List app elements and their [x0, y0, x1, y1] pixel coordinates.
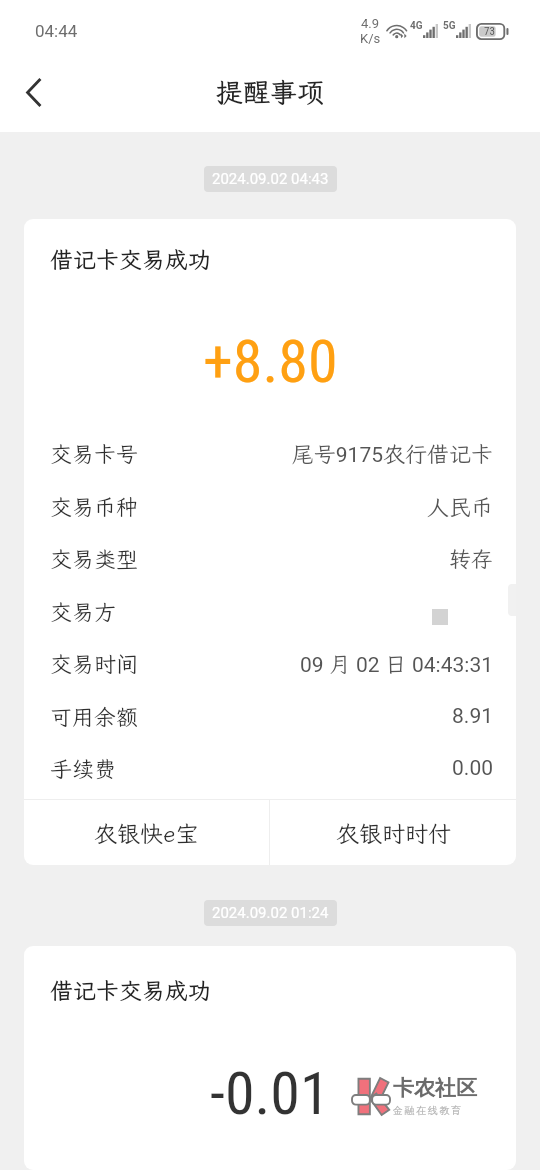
staticText: 尾号9175农行借记卡	[291, 439, 493, 468]
staticText: 交易币种	[50, 492, 139, 521]
button[interactable]: 借记卡交易成功	[24, 219, 516, 865]
staticText: 交易方	[50, 597, 117, 626]
staticText: 交易时间	[50, 649, 139, 678]
staticText: 提醒事项	[216, 74, 324, 110]
staticText: 交易卡号	[50, 439, 139, 468]
button[interactable]: Back	[8, 67, 58, 117]
button[interactable]: 借记卡交易成功	[24, 946, 516, 1170]
staticText: 2024.09.02 01:24	[212, 904, 329, 922]
staticText: 09 月 02 日 04:43:31	[299, 649, 493, 678]
staticText: 73	[484, 25, 495, 38]
staticText: 4G	[410, 20, 423, 32]
button[interactable]: 农银时时付	[270, 800, 516, 865]
button[interactable]: 农银快e宝	[24, 800, 269, 865]
staticText: 农银时时付	[336, 818, 451, 848]
staticText: K/s	[360, 31, 381, 46]
staticText: 农银快e宝	[94, 818, 199, 848]
staticText: 手续费	[50, 754, 117, 783]
staticText: 0.00	[452, 756, 493, 781]
staticText: 04:44	[35, 21, 78, 41]
staticText: 8.91	[452, 704, 493, 729]
staticText: 交易类型	[50, 544, 139, 573]
staticText: 卡农社区	[393, 1075, 477, 1101]
staticText: 转存	[448, 544, 493, 573]
staticText: 借记卡交易成功	[50, 244, 211, 274]
staticText: 人民币	[426, 492, 493, 521]
staticText: 2024.09.02 04:43	[212, 170, 329, 188]
staticText: -0.01	[210, 1058, 330, 1128]
staticText: 金融在线教育	[393, 1104, 463, 1117]
staticText: 借记卡交易成功	[50, 975, 211, 1005]
staticText: 5G	[443, 20, 456, 32]
staticText: 可用余额	[50, 702, 139, 731]
staticText: 4.9	[361, 16, 380, 31]
staticText: +8.80	[203, 326, 338, 396]
